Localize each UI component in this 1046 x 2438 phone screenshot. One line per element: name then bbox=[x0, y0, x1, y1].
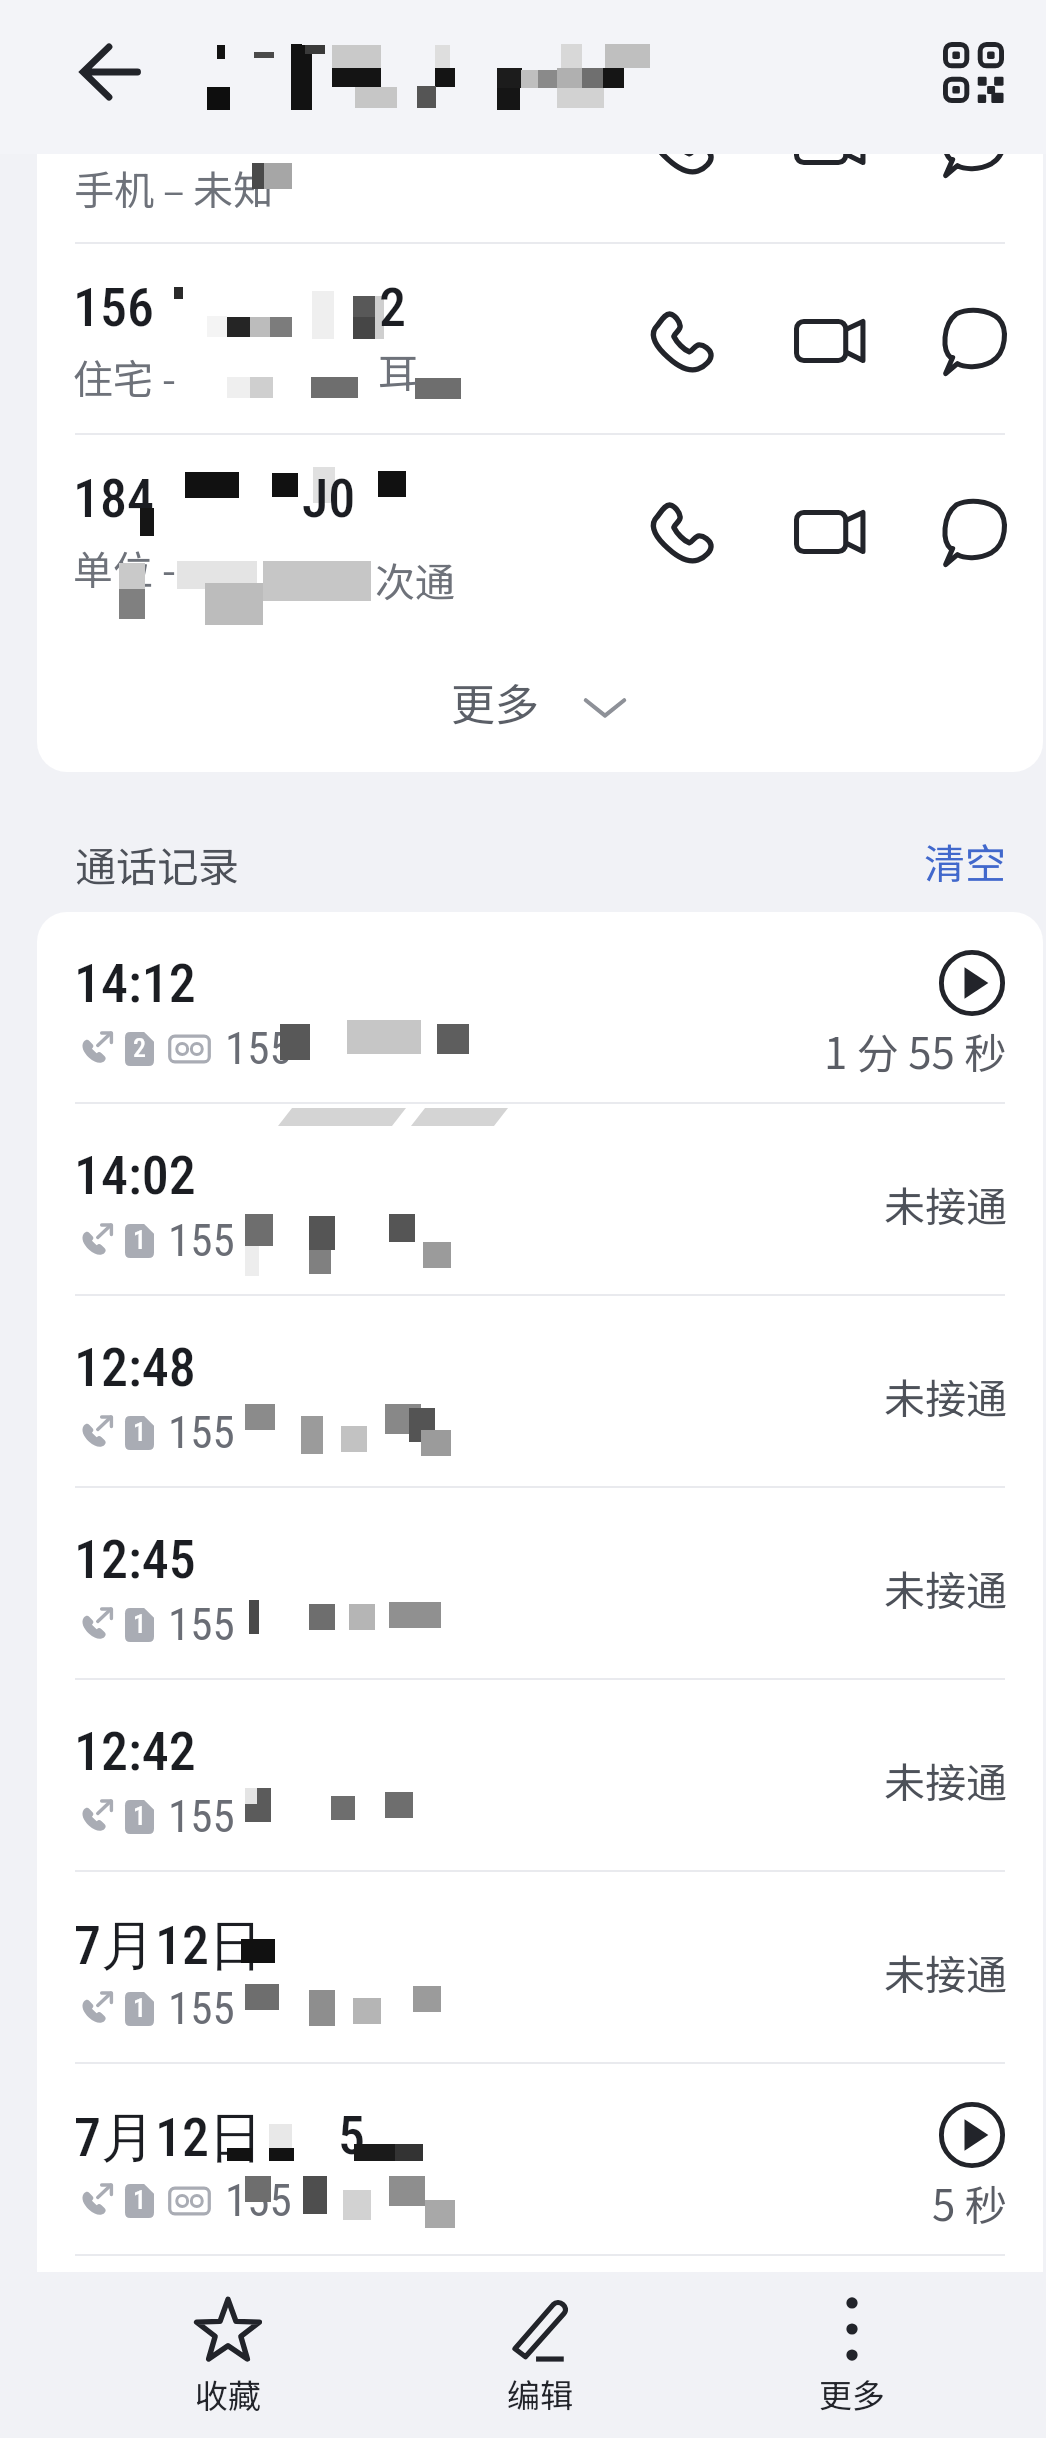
staticText: 清空 bbox=[924, 831, 1006, 890]
staticText: 7月12日 bbox=[74, 2104, 263, 2172]
staticText: 手机 – 未知 bbox=[74, 159, 274, 217]
button[interactable]: 7月12日 bbox=[37, 1872, 1043, 2062]
staticText: 未接通 bbox=[884, 1174, 1007, 1233]
button[interactable]: Call bbox=[639, 487, 729, 577]
button[interactable]: Play recording bbox=[930, 941, 1014, 1025]
staticText: 通话记录 bbox=[75, 834, 239, 893]
staticText: 12:48 bbox=[74, 1336, 196, 1399]
staticText: 12:42 bbox=[74, 1720, 196, 1783]
button[interactable]: Play recording bbox=[930, 2093, 1014, 2177]
staticText: 155 bbox=[168, 1214, 235, 1267]
staticText: 5 秒 bbox=[932, 2172, 1007, 2233]
staticText: 2 bbox=[133, 1033, 146, 1063]
staticText: 155 bbox=[168, 1406, 235, 1459]
staticText: 184 bbox=[73, 467, 154, 530]
button[interactable]: 12:48 bbox=[37, 1296, 1043, 1486]
staticText: 14:02 bbox=[74, 1144, 196, 1207]
staticText: 单位 - bbox=[73, 539, 176, 597]
staticText: 未接通 bbox=[884, 1750, 1007, 1809]
button[interactable]: 清空 bbox=[900, 818, 1030, 902]
button[interactable]: Message bbox=[929, 487, 1019, 577]
staticText: 1 bbox=[133, 1225, 146, 1255]
staticText: 155 bbox=[168, 1982, 235, 2035]
button[interactable]: Call bbox=[639, 296, 729, 386]
staticText: 收藏 bbox=[195, 2370, 261, 2418]
staticText: 次通 bbox=[375, 551, 455, 609]
staticText: 155 bbox=[225, 2174, 292, 2227]
staticText: 12:45 bbox=[74, 1528, 196, 1591]
staticText: 1 bbox=[133, 1801, 146, 1831]
staticText: 7月12日 bbox=[74, 1912, 263, 1980]
button[interactable]: Video call bbox=[784, 487, 874, 577]
button[interactable]: 14:12 bbox=[37, 912, 1043, 1102]
button[interactable]: 收藏 bbox=[72, 2272, 384, 2438]
staticText: 5 bbox=[338, 2104, 365, 2167]
button[interactable]: 更多 bbox=[696, 2272, 1008, 2438]
staticText: 1 bbox=[133, 1609, 146, 1639]
staticText: 未接通 bbox=[884, 1942, 1007, 2001]
staticText: 1 bbox=[133, 1993, 146, 2023]
button[interactable]: 12:45 bbox=[37, 1488, 1043, 1678]
button[interactable]: 编辑 bbox=[384, 2272, 696, 2438]
staticText: 155 bbox=[168, 1598, 235, 1651]
staticText: 住宅 - bbox=[73, 348, 176, 406]
button[interactable]: 184 bbox=[37, 435, 1043, 624]
staticText: 未接通 bbox=[884, 1366, 1007, 1425]
button[interactable]: 156 bbox=[37, 244, 1043, 433]
staticText: 155 bbox=[225, 1022, 292, 1075]
staticText: 2 bbox=[379, 276, 406, 339]
staticText: 更多 bbox=[819, 2370, 885, 2418]
button[interactable]: 12:42 bbox=[37, 1680, 1043, 1870]
staticText: 更多 bbox=[451, 670, 539, 734]
staticText: 155 bbox=[168, 1790, 235, 1843]
staticText: J0 bbox=[302, 467, 356, 530]
staticText: 耳 bbox=[378, 342, 418, 400]
staticText: 14:12 bbox=[74, 952, 196, 1015]
button[interactable]: QR code bbox=[929, 28, 1017, 116]
button[interactable]: Back bbox=[65, 28, 153, 116]
button[interactable]: 7月12日 bbox=[37, 2064, 1043, 2254]
button[interactable]: Message bbox=[929, 296, 1019, 386]
staticText: 1 分 55 秒 bbox=[824, 1020, 1007, 1081]
staticText: 1 bbox=[133, 1417, 146, 1447]
button[interactable]: 14:02 bbox=[37, 1104, 1043, 1294]
staticText: 156 bbox=[73, 276, 154, 339]
staticText: 未接通 bbox=[884, 1558, 1007, 1617]
button[interactable]: 手机 – 未知 bbox=[37, 154, 1043, 242]
staticText: 编辑 bbox=[507, 2370, 573, 2418]
button[interactable]: 更多 bbox=[37, 632, 1043, 772]
staticText: 1 bbox=[133, 2185, 146, 2215]
button[interactable]: Video call bbox=[784, 296, 874, 386]
